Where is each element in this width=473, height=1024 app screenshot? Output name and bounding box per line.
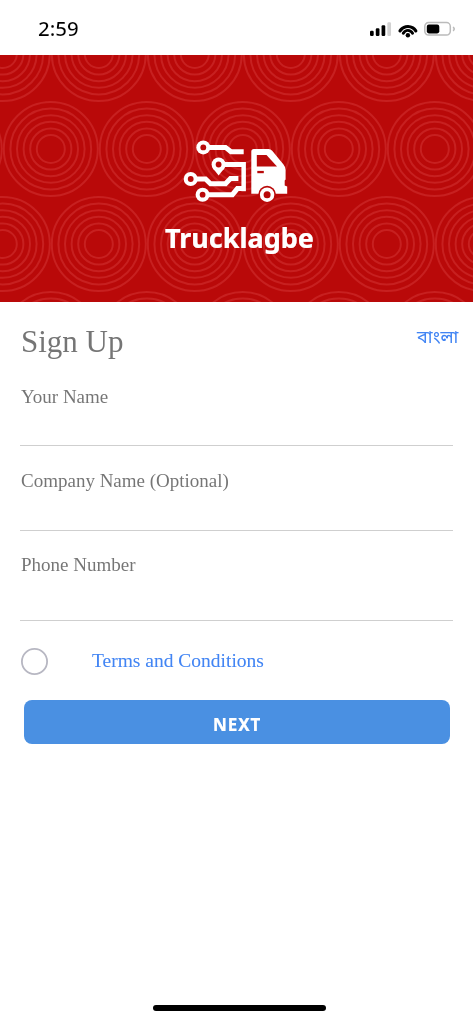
staticText: Trucklagbe: [165, 219, 314, 256]
staticText: 2:59: [38, 14, 79, 42]
button[interactable]: বাংলা: [417, 326, 459, 350]
staticText: Sign Up: [21, 324, 124, 358]
button[interactable]: Accept Terms and Conditions: [17, 644, 51, 678]
staticText: বাংলা: [417, 326, 459, 350]
staticText: NEXT: [213, 713, 262, 736]
staticText: Phone Number: [21, 554, 136, 575]
button[interactable]: Terms and Conditions: [92, 650, 264, 672]
staticText: Your Name: [21, 386, 109, 407]
button[interactable]: NEXT: [24, 700, 450, 744]
staticText: Company Name (Optional): [21, 470, 229, 491]
staticText: Terms and Conditions: [92, 650, 264, 672]
